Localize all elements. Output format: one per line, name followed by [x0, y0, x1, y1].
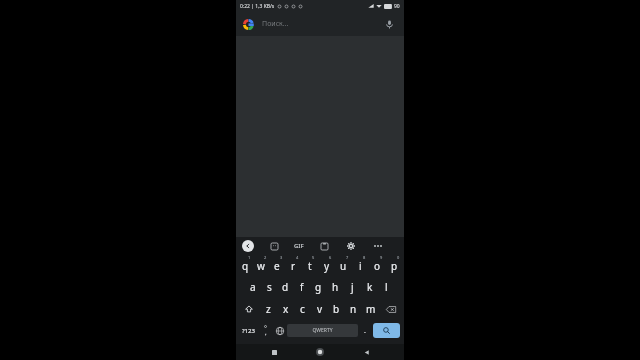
button[interactable]: b — [328, 298, 345, 320]
staticText: m — [366, 302, 376, 316]
staticText: 5 — [312, 255, 315, 260]
staticText: w — [257, 259, 265, 273]
button[interactable]: QWERTY — [287, 324, 358, 337]
button[interactable]: l — [378, 276, 395, 298]
staticText: f — [300, 280, 304, 294]
staticText: s — [267, 280, 272, 294]
button[interactable]: More options — [371, 239, 385, 253]
staticText: ?123 — [242, 327, 255, 335]
button[interactable]: Clipboard — [317, 239, 331, 253]
staticText: 0:22 | 1,3 KB/s — [240, 3, 275, 10]
staticText: 90 — [394, 3, 400, 10]
staticText: j — [351, 280, 354, 294]
staticText: n — [350, 302, 357, 316]
button[interactable]: k — [361, 276, 378, 298]
staticText: 7 — [346, 255, 349, 260]
button[interactable]: d — [277, 276, 293, 298]
button[interactable]: 0 — [386, 254, 403, 276]
staticText: a — [250, 280, 256, 294]
button[interactable]: 9 — [369, 254, 386, 276]
button[interactable]: Voice search — [381, 16, 397, 32]
button[interactable]: . — [358, 320, 372, 341]
staticText: . — [364, 326, 366, 336]
staticText: z — [266, 302, 271, 316]
button[interactable]: m — [362, 298, 379, 320]
staticText: e — [274, 259, 280, 273]
button[interactable]: Back — [242, 240, 254, 252]
staticText: h — [332, 280, 339, 294]
button[interactable]: s — [261, 276, 277, 298]
button[interactable]: Shift — [237, 298, 260, 320]
staticText: x — [283, 302, 289, 316]
button[interactable]: 5 — [301, 254, 318, 276]
staticText: i — [359, 259, 362, 273]
staticText: 9 — [380, 255, 383, 260]
button[interactable]: Home — [312, 344, 328, 360]
button[interactable]: z — [260, 298, 277, 320]
staticText: u — [340, 259, 347, 273]
button[interactable]: Search — [373, 323, 400, 338]
staticText: 8 — [363, 255, 366, 260]
staticText: 4 — [296, 255, 299, 260]
button[interactable]: h — [327, 276, 344, 298]
button[interactable]: Recents — [266, 344, 282, 360]
button[interactable]: f — [293, 276, 310, 298]
staticText: GIF — [294, 242, 304, 250]
staticText: 6 — [329, 255, 332, 260]
staticText: v — [317, 302, 323, 316]
staticText: p — [391, 259, 398, 273]
staticText: 0 — [397, 255, 400, 260]
staticText: 1 — [248, 255, 251, 260]
button[interactable]: 2 — [253, 254, 269, 276]
button[interactable]: 1 — [237, 254, 253, 276]
staticText: d — [282, 280, 289, 294]
staticText: k — [367, 280, 373, 294]
staticText: Поиск... — [262, 19, 289, 29]
button[interactable]: Backspace — [379, 298, 403, 320]
staticText: l — [385, 280, 388, 294]
staticText: 3 — [280, 255, 283, 260]
button[interactable]: GIF — [294, 239, 304, 253]
staticText: QWERTY — [312, 327, 333, 334]
button[interactable]: n — [345, 298, 362, 320]
button[interactable]: v — [311, 298, 328, 320]
button[interactable]: 6 — [318, 254, 335, 276]
button[interactable]: Stickers — [267, 239, 281, 253]
staticText: r — [291, 259, 296, 273]
staticText: y — [324, 259, 330, 273]
button[interactable]: a — [245, 276, 261, 298]
staticText: t — [308, 259, 312, 273]
staticText: 2 — [264, 255, 267, 260]
button[interactable]: 4 — [285, 254, 301, 276]
button[interactable]: c — [294, 298, 311, 320]
button[interactable]: Change keyboard language — [272, 320, 287, 341]
button[interactable]: Settings — [344, 239, 358, 253]
staticText: g — [315, 280, 322, 294]
staticText: b — [333, 302, 340, 316]
button[interactable]: 7 — [335, 254, 352, 276]
staticText: q — [242, 259, 249, 273]
button[interactable]: x — [277, 298, 294, 320]
button[interactable]: Поиск... — [236, 12, 404, 36]
staticText: o — [374, 259, 381, 273]
button[interactable]: Comma — [258, 320, 272, 341]
button[interactable]: 8 — [352, 254, 369, 276]
button[interactable]: Back — [358, 344, 374, 360]
button[interactable]: j — [344, 276, 361, 298]
staticText: , — [265, 329, 267, 337]
button[interactable]: 3 — [269, 254, 285, 276]
staticText: c — [300, 302, 305, 316]
button[interactable]: g — [310, 276, 327, 298]
button[interactable]: ?123 — [239, 320, 258, 341]
